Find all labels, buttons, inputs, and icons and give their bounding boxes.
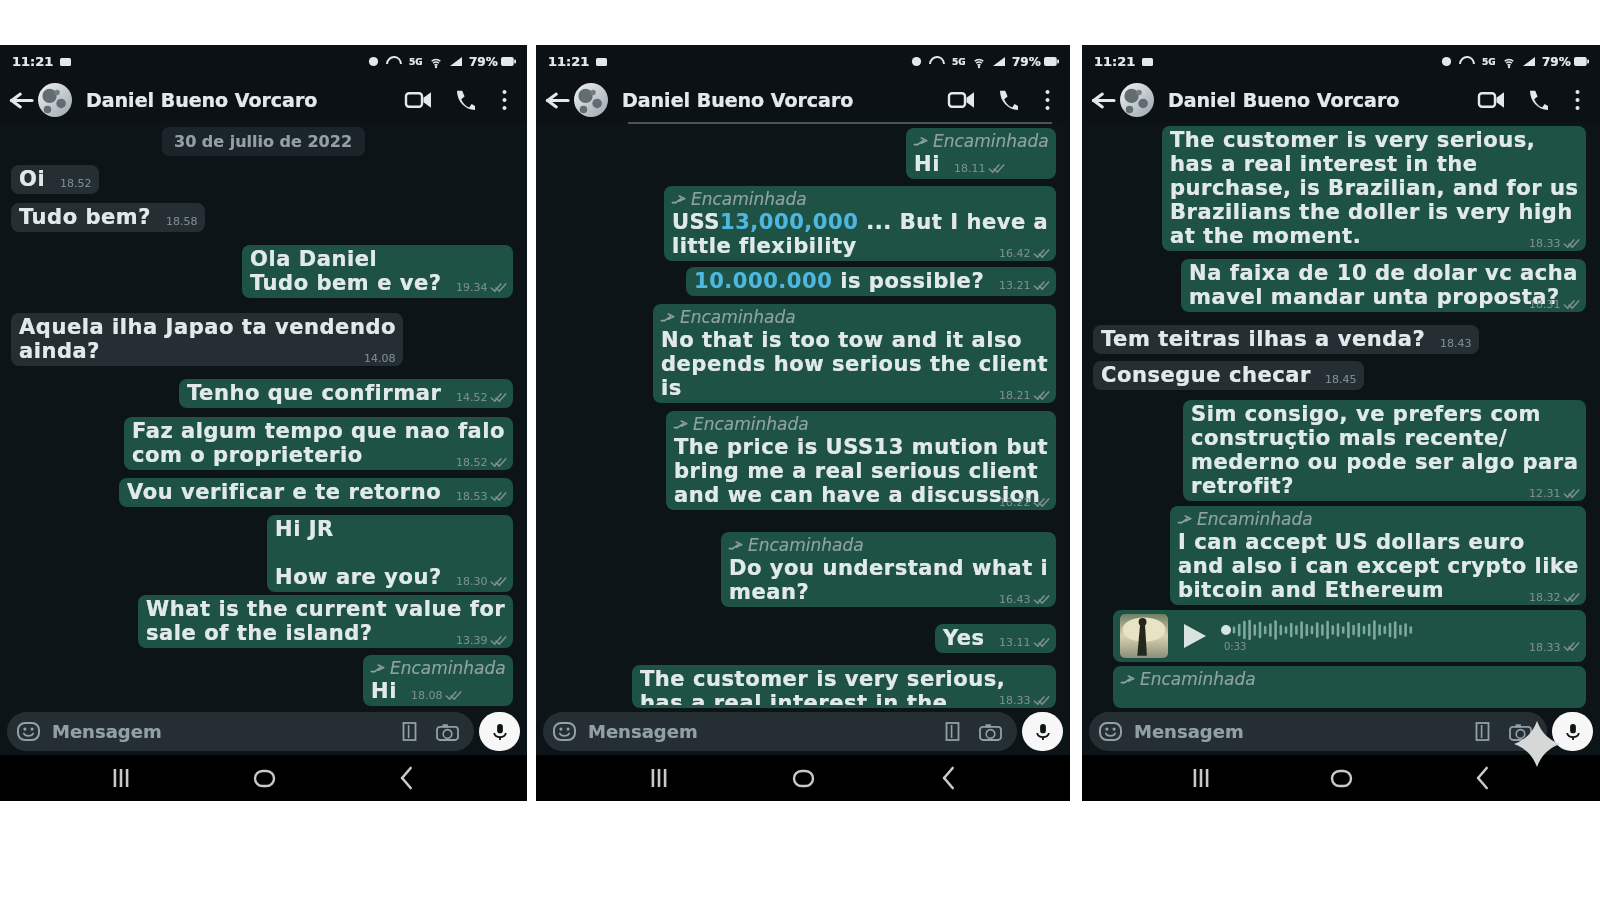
button[interactable]: Tudo bem? [11,203,205,232]
staticText: The customer is very serious, [640,667,1006,691]
button[interactable]: Home [242,756,286,800]
button[interactable]: Voice message [1022,712,1063,751]
staticText: 11:21 [548,54,590,69]
staticText: 18.33 [999,694,1031,707]
button[interactable]: Mensagem [1089,712,1547,751]
button[interactable]: Tem teitras ilhas a venda? [1093,325,1479,354]
button[interactable]: Home [781,756,825,800]
button[interactable]: Mensagem [7,712,474,751]
button[interactable]: Tenho que confirmar [179,379,513,408]
button[interactable]: Voice call [1522,84,1554,116]
button[interactable]: Encaminhada [1113,666,1586,708]
button[interactable]: Encaminhada [906,128,1056,179]
button[interactable]: Profile picture [574,83,608,117]
staticText: Yes [943,626,985,650]
staticText: bring me a real serious client [674,459,1039,483]
staticText: 13.39 [456,634,488,647]
button[interactable]: Encaminhada [653,304,1056,403]
staticText: 18.45 [1325,373,1357,386]
button[interactable]: Video call [1474,83,1508,117]
staticText: Encaminhada [680,307,796,327]
button[interactable]: Vou verificar e te retorno [119,478,513,507]
staticText: bitcoin and Ethereum [1178,578,1445,602]
staticText: Tudo bem? [19,205,152,229]
button[interactable]: Ola Daniel [242,245,513,298]
staticText: 16.43 [999,593,1031,606]
button[interactable]: The customer is very serious, [1162,126,1586,251]
staticText: The price is USS13 mution but [674,435,1049,459]
staticText: Ola Daniel [250,247,378,271]
staticText: com o proprieterio [132,443,363,467]
staticText: 79% [1542,55,1571,69]
button[interactable]: Profile picture [1120,83,1154,117]
staticText: 79% [469,55,498,69]
button[interactable]: More options [491,87,517,113]
staticText: 16.42 [999,247,1031,260]
button[interactable]: Yes [935,624,1056,653]
button[interactable]: Video call [401,83,435,117]
staticText: I can accept US dollars euro [1178,530,1525,554]
staticText: Sim consigo, ve prefers com [1191,402,1541,426]
staticText: 18.32 [1529,591,1561,604]
staticText: 18.22 [999,496,1031,509]
staticText: Encaminhada [1140,669,1256,689]
button[interactable]: Sim consigo, ve prefers com [1183,400,1586,501]
button[interactable]: Encaminhada [363,655,513,706]
staticText: at the moment. [1170,224,1362,248]
button[interactable]: Faz algum tempo que nao falo [124,417,513,470]
staticText: mean? [729,580,810,604]
button[interactable]: Aquela ilha Japao ta vendendo [11,313,403,366]
button[interactable]: Voice message [1552,712,1593,751]
button[interactable]: Encaminhada [664,186,1056,261]
button[interactable]: Encaminhada [666,411,1056,510]
button[interactable]: Recents [637,756,681,800]
staticText: purchase, is Brazilian, and for us [1170,176,1579,200]
button[interactable]: 30 de jullio de 2022 [162,127,365,156]
button[interactable]: Profile picture [38,83,72,117]
button[interactable]: Hi JR [267,515,513,592]
staticText: 18.52 [456,456,488,469]
staticText: No that is too tow and it also [661,328,1023,352]
button[interactable]: Recents [99,756,143,800]
button[interactable]: Back [926,756,970,800]
staticText: sale of the island? [146,621,373,645]
button[interactable]: Encaminhada [721,532,1056,607]
button[interactable]: Voice call [449,84,481,116]
staticText: 30 de jullio de 2022 [174,132,353,151]
button[interactable]: Back [541,84,573,116]
button[interactable]: Consegue checar [1093,361,1364,390]
button[interactable]: What is the current value for [138,595,513,648]
button[interactable]: Voice message [479,712,520,751]
staticText: 13.11 [999,636,1031,649]
staticText: 0:33 [1224,641,1247,653]
button[interactable]: Back [1460,756,1504,800]
button[interactable]: Oi [11,165,99,194]
button[interactable]: Back [384,756,428,800]
button[interactable]: Home [1319,756,1363,800]
button[interactable]: More options [1034,87,1060,113]
button[interactable]: Back [5,84,37,116]
staticText: 79% [1012,55,1041,69]
button[interactable]: The customer is very serious, [632,665,1056,708]
staticText: 18.33 [1529,237,1561,250]
staticText: 18.52 [60,177,92,190]
staticText: 13.21 [999,279,1031,292]
staticText: Hi JR [275,517,334,541]
staticText: Do you understand what i [729,556,1049,580]
button[interactable]: Na faixa de 10 de dolar vc acha [1181,259,1586,312]
button[interactable]: 10.000.000 is possible? [686,267,1056,296]
button[interactable]: Video call [944,83,978,117]
button[interactable]: More options [1564,87,1590,113]
staticText: Faz algum tempo que nao falo [132,419,506,443]
staticText: Brazilians the doller is very high [1170,200,1573,224]
button[interactable]: Back [1087,84,1119,116]
staticText: Consegue checar [1101,363,1311,387]
staticText: construçtio mals recente/ [1191,426,1508,450]
button[interactable]: Mensagem [543,712,1017,751]
staticText: Mensagem [588,721,698,742]
button[interactable]: Recents [1179,756,1223,800]
button[interactable]: Voice message [1113,610,1586,662]
button[interactable]: Encaminhada [1170,506,1586,605]
staticText: Vou verificar e te retorno [127,480,442,504]
button[interactable]: Voice call [992,84,1024,116]
